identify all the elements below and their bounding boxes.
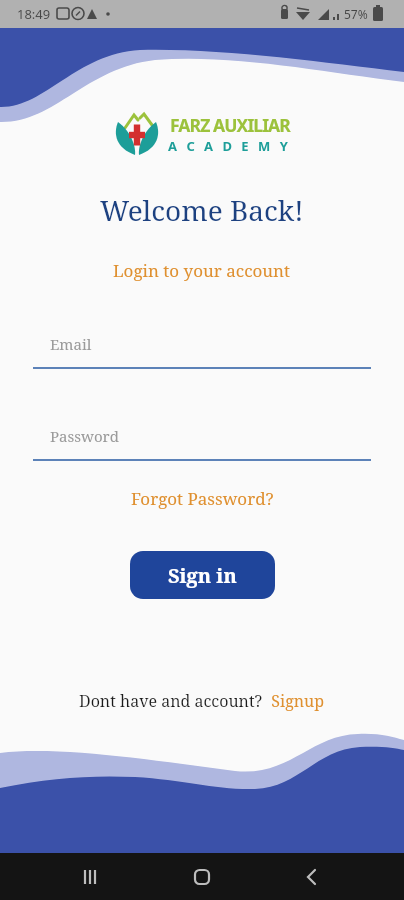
button[interactable]: Email bbox=[33, 330, 371, 369]
staticText: 18:49 bbox=[17, 5, 51, 23]
button[interactable] bbox=[184, 859, 220, 895]
staticText: A C A D E M Y bbox=[168, 137, 291, 155]
button[interactable]: Signup bbox=[263, 690, 325, 712]
staticText: Dont have and account? bbox=[79, 690, 263, 712]
staticText: 57% bbox=[344, 6, 368, 22]
button[interactable] bbox=[74, 859, 110, 895]
button[interactable]: Sign in bbox=[130, 551, 275, 599]
staticText: Login to your account bbox=[113, 259, 291, 282]
staticText: Email bbox=[50, 334, 92, 354]
staticText: Password bbox=[50, 426, 119, 446]
staticText: Welcome Back! bbox=[100, 191, 304, 229]
staticText: Sign in bbox=[168, 562, 237, 589]
button[interactable]: Forgot Password? bbox=[131, 487, 274, 510]
staticText: FARZ AUXILIAR bbox=[170, 113, 290, 137]
button[interactable] bbox=[294, 859, 330, 895]
button[interactable]: Password bbox=[33, 422, 371, 461]
